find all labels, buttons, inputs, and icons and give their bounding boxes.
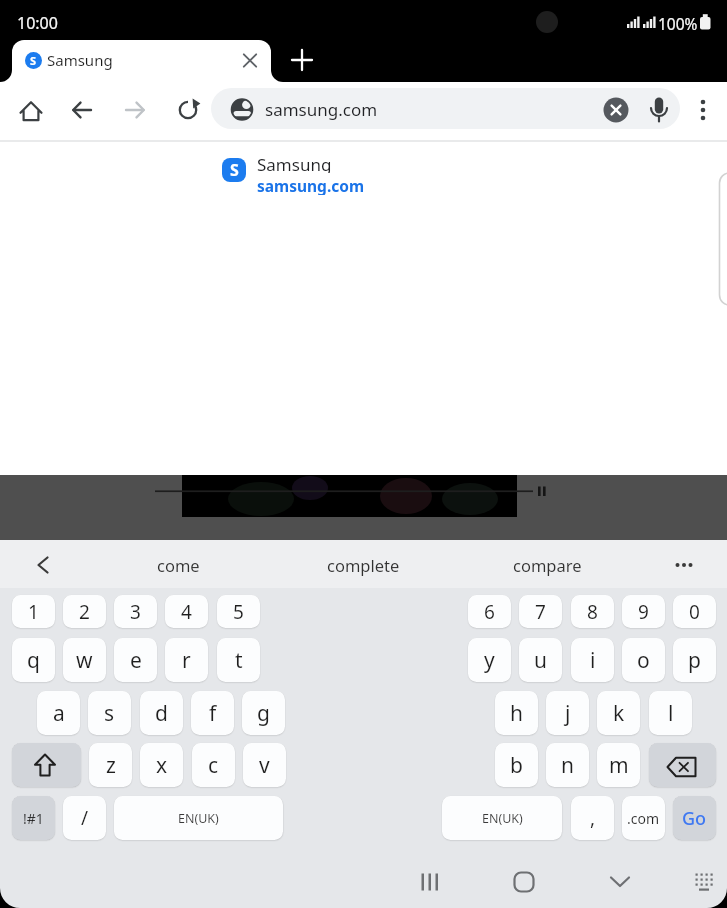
button[interactable]: !#1 [12, 796, 55, 840]
button[interactable]: 6 [468, 595, 511, 628]
button[interactable]: 4 [165, 595, 208, 628]
staticText: EN(UK) [178, 810, 219, 827]
staticText: l [668, 699, 674, 728]
staticText: a [53, 699, 65, 728]
staticText: Samsung [257, 153, 332, 173]
button[interactable]: r [165, 638, 208, 682]
button[interactable]: / [63, 796, 106, 840]
button[interactable] [108, 544, 248, 584]
button[interactable]: c [192, 743, 235, 787]
button[interactable] [211, 88, 680, 129]
staticText: complete [327, 554, 400, 576]
button[interactable]: b [495, 743, 538, 787]
staticText: 4 [181, 599, 192, 625]
staticText: g [257, 699, 270, 728]
staticText: !#1 [23, 809, 44, 828]
staticText: 2 [79, 599, 90, 625]
button[interactable]: EN(UK) [442, 796, 562, 840]
button[interactable]: 8 [571, 595, 614, 628]
button[interactable]: 1 [12, 595, 55, 628]
button[interactable]: n [546, 743, 589, 787]
button[interactable] [293, 544, 433, 584]
staticText: w [76, 646, 93, 675]
button[interactable] [20, 544, 66, 584]
staticText: f [209, 699, 217, 728]
button[interactable]: 0 [673, 595, 716, 628]
staticText: Samsung [47, 50, 113, 70]
staticText: 5 [233, 599, 244, 625]
staticText: 100% [658, 13, 698, 32]
staticText: , [590, 805, 596, 831]
button[interactable]: Go [673, 796, 716, 840]
button[interactable] [409, 862, 449, 902]
button[interactable]: y [468, 638, 511, 682]
button[interactable]: w [63, 638, 106, 682]
staticText: c [208, 751, 219, 780]
button[interactable] [172, 94, 204, 126]
staticText: h [510, 699, 523, 728]
staticText: 9 [638, 599, 649, 625]
button[interactable]: s [88, 691, 131, 735]
button[interactable]: f [191, 691, 234, 735]
button[interactable]: 5 [217, 595, 260, 628]
button[interactable]: i [571, 638, 614, 682]
staticText: 1 [28, 599, 39, 625]
button[interactable] [684, 862, 724, 902]
button[interactable] [119, 94, 151, 126]
staticText: i [590, 646, 596, 675]
button[interactable]: h [495, 691, 538, 735]
button[interactable]: m [597, 743, 640, 787]
button[interactable]: , [571, 796, 614, 840]
button[interactable]: l [649, 691, 692, 735]
button[interactable]: 7 [519, 595, 562, 628]
button[interactable]: 9 [622, 595, 665, 628]
button[interactable] [210, 150, 510, 198]
staticText: b [510, 751, 523, 780]
staticText: q [27, 646, 40, 675]
staticText: 7 [535, 599, 546, 625]
button[interactable] [12, 743, 81, 787]
button[interactable]: 2 [63, 595, 106, 628]
button[interactable]: j [546, 691, 589, 735]
button[interactable] [660, 544, 708, 584]
button[interactable]: e [114, 638, 157, 682]
button[interactable]: x [140, 743, 183, 787]
button[interactable]: EN(UK) [114, 796, 283, 840]
button[interactable]: .com [622, 796, 665, 840]
staticText: r [182, 646, 191, 675]
staticText: t [235, 646, 243, 675]
button[interactable]: t [217, 638, 260, 682]
button[interactable] [288, 46, 316, 74]
button[interactable] [66, 94, 98, 126]
button[interactable] [238, 48, 262, 72]
button[interactable] [477, 544, 617, 584]
button[interactable] [504, 862, 544, 902]
button[interactable]: o [622, 638, 665, 682]
button[interactable]: g [242, 691, 285, 735]
button[interactable]: k [597, 691, 640, 735]
staticText: z [106, 751, 116, 780]
staticText: k [613, 699, 625, 728]
staticText: .com [627, 809, 660, 828]
staticText: come [157, 554, 200, 576]
button[interactable] [687, 94, 719, 126]
button[interactable] [15, 94, 47, 126]
staticText: j [565, 699, 571, 728]
button[interactable]: a [37, 691, 80, 735]
button[interactable]: p [673, 638, 716, 682]
staticText: / [81, 805, 89, 831]
button[interactable] [649, 743, 716, 787]
button[interactable]: z [89, 743, 132, 787]
button[interactable]: u [519, 638, 562, 682]
staticText: m [609, 751, 629, 780]
button[interactable]: q [12, 638, 55, 682]
button[interactable]: d [140, 691, 183, 735]
staticText: v [259, 751, 270, 780]
button[interactable] [12, 40, 271, 82]
button[interactable]: v [243, 743, 286, 787]
staticText: x [156, 751, 168, 780]
staticText: 3 [130, 599, 141, 625]
button[interactable]: 3 [114, 595, 157, 628]
button[interactable] [600, 862, 640, 902]
staticText: samsung.com [265, 98, 378, 120]
